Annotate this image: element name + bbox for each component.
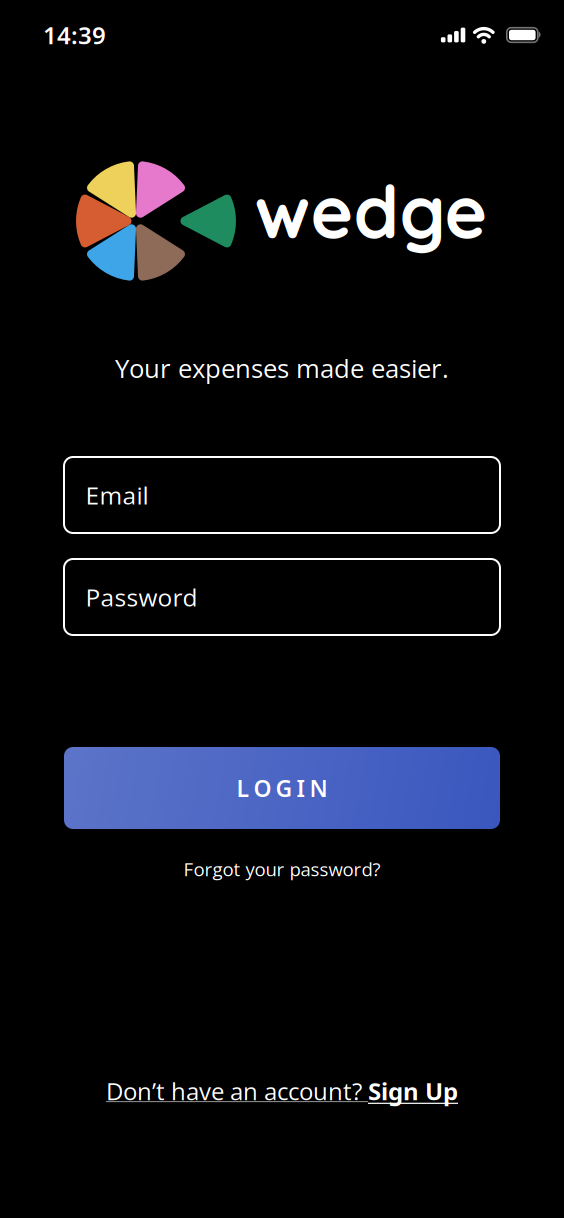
staticText: L O G I N (236, 772, 327, 804)
staticText: Password (85, 580, 197, 614)
staticText: 14:39 (43, 19, 106, 51)
staticText: wedge (254, 166, 487, 256)
button[interactable]: Email (64, 457, 500, 533)
button[interactable]: L O G I N (64, 747, 500, 829)
button[interactable]: Forgot your password? (183, 855, 380, 883)
button[interactable]: Password (64, 559, 500, 635)
staticText: Don’t have an account? Sign Up (106, 1075, 458, 1107)
staticText: Forgot your password? (183, 856, 380, 882)
button[interactable]: Don’t have an account? Sign Up (106, 1076, 458, 1106)
staticText: Your expenses made easier. (115, 350, 449, 385)
staticText: Email (85, 478, 148, 512)
